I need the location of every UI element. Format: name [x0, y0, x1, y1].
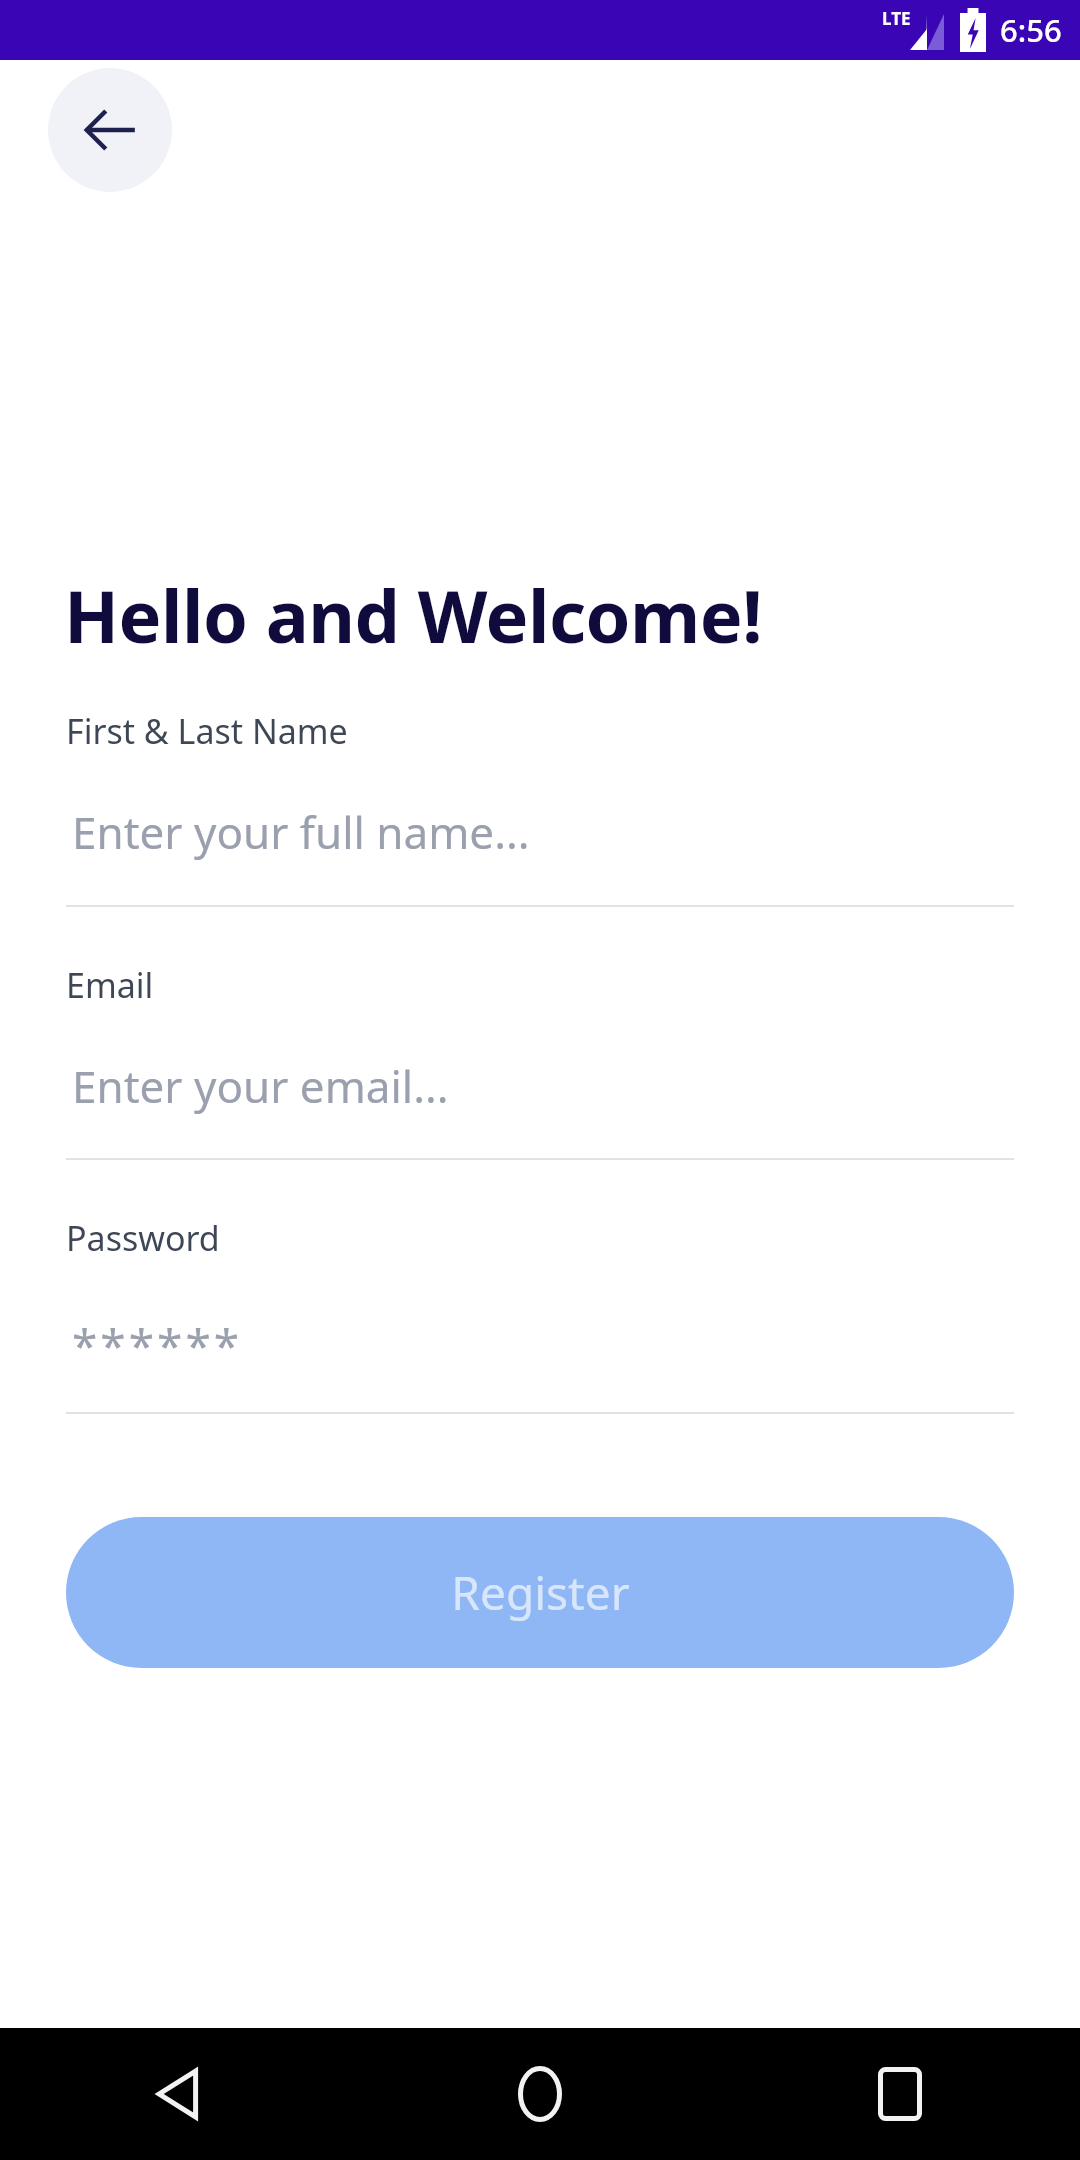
staticText: Password — [66, 1215, 220, 1261]
button[interactable]: Enter your full name... — [66, 764, 1014, 900]
button[interactable]: ****** — [66, 1271, 1014, 1407]
staticText: Enter your full name... — [72, 802, 530, 862]
staticText: LTE — [882, 7, 911, 30]
button[interactable]: Back — [0, 2028, 360, 2160]
staticText: ****** — [72, 1314, 243, 1377]
staticText: Enter your email... — [72, 1056, 449, 1116]
button[interactable]: Recent apps — [720, 2028, 1080, 2160]
staticText: Email — [66, 962, 154, 1008]
button[interactable]: Back — [48, 68, 172, 192]
staticText: Register — [451, 1561, 630, 1624]
button[interactable]: Register — [66, 1517, 1014, 1668]
button[interactable]: Home — [360, 2028, 720, 2160]
staticText: Hello and Welcome! — [64, 566, 763, 664]
staticText: 6:56 — [1000, 9, 1062, 51]
staticText: First & Last Name — [66, 708, 348, 754]
button[interactable]: Enter your email... — [66, 1018, 1014, 1154]
